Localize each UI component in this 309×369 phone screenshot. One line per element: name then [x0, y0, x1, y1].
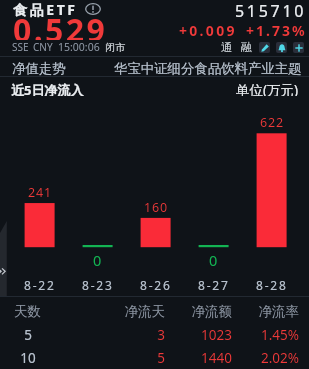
- button[interactable]: Add: [293, 42, 304, 53]
- staticText: 天数: [14, 303, 41, 320]
- button[interactable]: 5: [0, 323, 309, 346]
- button[interactable]: 通: [221, 40, 232, 54]
- staticText: 2.02%: [245, 349, 299, 367]
- staticText: 0.529: [13, 8, 108, 40]
- staticText: 食品ETF: [13, 0, 78, 18]
- staticText: +1.73%: [246, 21, 307, 40]
- staticText: 1440: [182, 349, 232, 367]
- staticText: 净流天: [115, 303, 165, 320]
- staticText: 5: [115, 349, 165, 367]
- staticText: 622: [260, 114, 284, 131]
- staticText: 0: [209, 250, 219, 268]
- staticText: 华宝中证细分食品饮料产业主题: [114, 60, 302, 76]
- staticText: 8-23: [82, 277, 114, 290]
- staticText: 241: [28, 184, 52, 201]
- staticText: 净流额: [182, 303, 232, 320]
- button[interactable]: 净值走势: [12, 60, 66, 76]
- staticText: CNY: [33, 40, 53, 54]
- staticText: 近5日净流入: [11, 81, 84, 96]
- staticText: 1023: [182, 326, 232, 344]
- staticText: 3: [115, 326, 165, 344]
- staticText: 0: [93, 250, 103, 268]
- button[interactable]: Edit: [259, 42, 270, 53]
- button[interactable]: 10: [0, 346, 309, 369]
- staticText: +0.009: [179, 21, 237, 40]
- button[interactable]: Alerts: [276, 42, 287, 53]
- button[interactable]: Expand panel: [0, 219, 8, 296]
- staticText: 闭市: [105, 41, 125, 54]
- button[interactable]: 融: [241, 40, 252, 54]
- staticText: 净流率: [245, 303, 299, 320]
- staticText: 515710: [235, 0, 307, 18]
- staticText: 5: [14, 326, 42, 344]
- staticText: SSE: [12, 40, 29, 54]
- staticText: 1.45%: [245, 326, 299, 344]
- staticText: 15:00:06: [58, 40, 100, 54]
- staticText: 8-27: [198, 277, 230, 290]
- staticText: 160: [144, 199, 168, 216]
- button[interactable]: 天数: [0, 300, 309, 323]
- staticText: 8-26: [140, 277, 172, 290]
- staticText: 8-28: [256, 277, 288, 290]
- staticText: 10: [14, 349, 42, 367]
- staticText: 8-22: [24, 277, 56, 290]
- staticText: 单位(万元): [236, 81, 299, 96]
